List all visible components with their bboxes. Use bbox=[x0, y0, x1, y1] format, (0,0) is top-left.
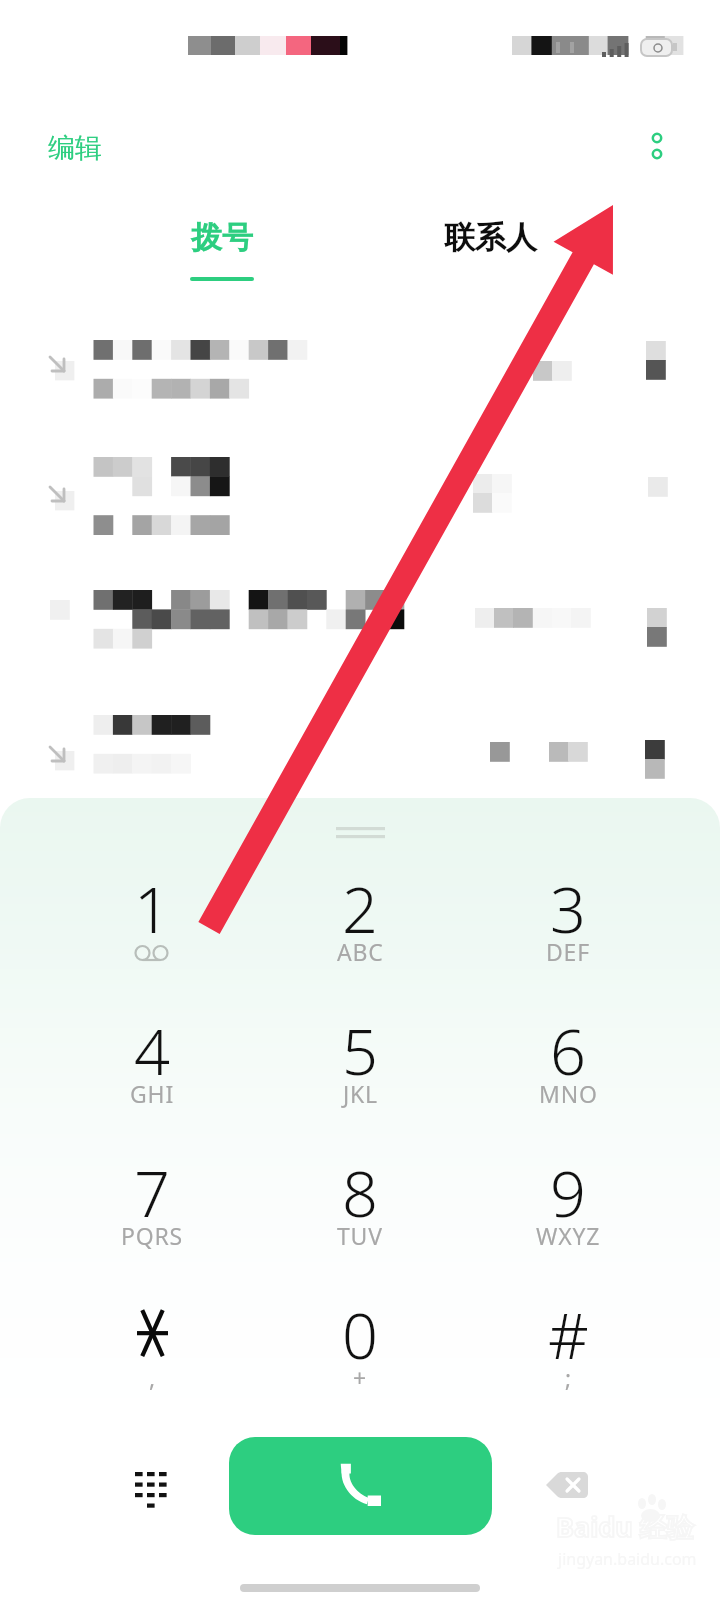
staticText: 3 bbox=[550, 866, 586, 952]
button[interactable]: 4 bbox=[66, 984, 238, 1120]
staticText: GHI bbox=[130, 1078, 174, 1109]
button[interactable]: More options bbox=[630, 121, 684, 175]
button[interactable]: 拨号 bbox=[148, 198, 296, 302]
button[interactable] bbox=[0, 700, 720, 795]
button[interactable]: 编辑 bbox=[34, 121, 116, 175]
staticText: ; bbox=[565, 1362, 572, 1393]
button[interactable]: 7 bbox=[66, 1126, 238, 1262]
button[interactable]: 3 bbox=[482, 842, 654, 978]
button[interactable]: Keypad bbox=[120, 1458, 182, 1518]
button[interactable]: 1 bbox=[66, 842, 238, 978]
staticText: + bbox=[353, 1362, 367, 1393]
button[interactable] bbox=[0, 440, 720, 555]
staticText: WXYZ bbox=[536, 1220, 601, 1251]
staticText: Baidu 经验 bbox=[556, 1508, 694, 1545]
staticText: 4 bbox=[134, 1008, 170, 1094]
staticText: TUV bbox=[337, 1220, 383, 1251]
staticText: 6 bbox=[550, 1008, 586, 1094]
staticText: jingyan.baidu.com bbox=[558, 1548, 697, 1570]
staticText: 联系人 bbox=[444, 218, 537, 257]
button[interactable] bbox=[0, 575, 720, 693]
button[interactable]: 8 bbox=[274, 1126, 446, 1262]
staticText: # bbox=[548, 1292, 589, 1378]
staticText: JKL bbox=[343, 1078, 378, 1109]
button[interactable]: Backspace bbox=[545, 1468, 595, 1502]
staticText: 7 bbox=[134, 1150, 170, 1236]
button[interactable] bbox=[0, 320, 720, 430]
staticText: 8 bbox=[342, 1150, 378, 1236]
staticText: DEF bbox=[546, 936, 590, 967]
staticText: 2 bbox=[342, 866, 378, 952]
button[interactable]: Call bbox=[229, 1437, 492, 1535]
staticText: 0 bbox=[342, 1292, 378, 1378]
staticText: 9 bbox=[550, 1150, 586, 1236]
button[interactable]: 9 bbox=[482, 1126, 654, 1262]
button[interactable]: 5 bbox=[274, 984, 446, 1120]
staticText: , bbox=[149, 1362, 156, 1393]
button[interactable]: , bbox=[66, 1268, 238, 1404]
staticText: 编辑 bbox=[48, 131, 102, 165]
button[interactable]: # bbox=[482, 1268, 654, 1404]
button[interactable]: 0 bbox=[274, 1268, 446, 1404]
staticText: ABC bbox=[337, 936, 384, 967]
staticText: 5 bbox=[342, 1008, 378, 1094]
staticText: 1 bbox=[134, 866, 170, 952]
button[interactable]: 6 bbox=[482, 984, 654, 1120]
staticText: PQRS bbox=[121, 1220, 184, 1251]
button[interactable]: 2 bbox=[274, 842, 446, 978]
staticText: MNO bbox=[539, 1078, 598, 1109]
staticText: 拨号 bbox=[191, 218, 253, 257]
button[interactable]: 联系人 bbox=[410, 198, 570, 302]
